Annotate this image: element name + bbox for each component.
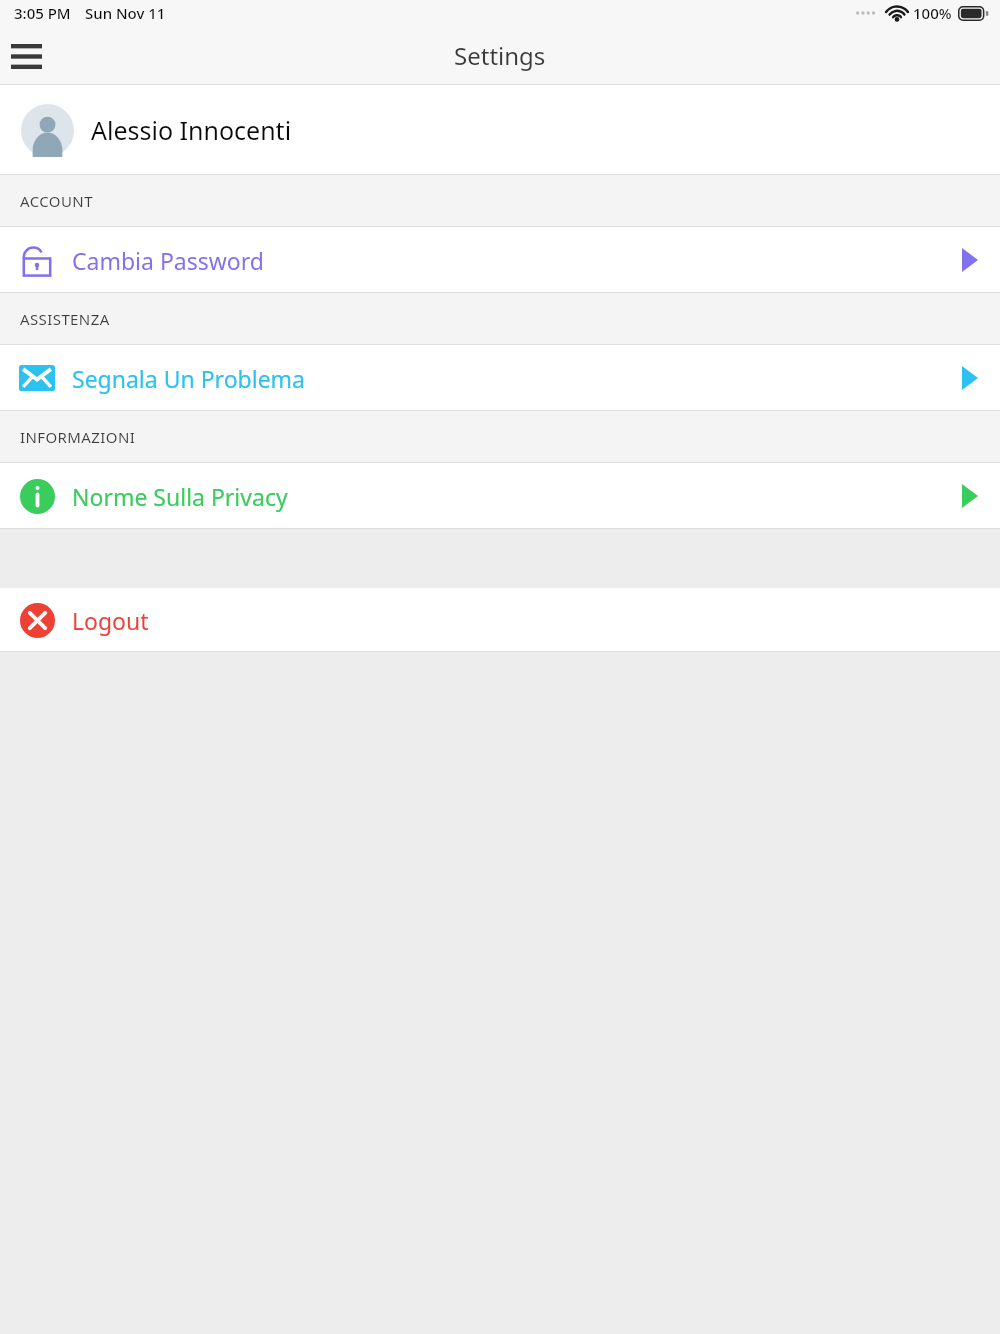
staticText: 100% xyxy=(913,3,952,23)
staticText: 3:05 PM xyxy=(14,3,71,23)
staticText: Settings xyxy=(454,39,546,72)
staticText: ACCOUNT xyxy=(20,191,93,211)
button[interactable]: Alessio Innocenti xyxy=(0,85,1000,175)
staticText: Segnala Un Problema xyxy=(72,363,306,394)
button[interactable]: Cambia Password xyxy=(0,227,1000,293)
button[interactable]: Segnala Un Problema xyxy=(0,345,1000,411)
button[interactable]: Menu xyxy=(0,30,52,82)
staticText: Alessio Innocenti xyxy=(91,113,292,147)
staticText: INFORMAZIONI xyxy=(20,427,136,447)
staticText: Cambia Password xyxy=(72,245,264,276)
button[interactable]: Logout xyxy=(0,588,1000,652)
button[interactable]: Norme Sulla Privacy xyxy=(0,463,1000,529)
staticText: Norme Sulla Privacy xyxy=(72,481,288,512)
staticText: Sun Nov 11 xyxy=(85,3,166,23)
staticText: Logout xyxy=(72,605,149,636)
staticText: ASSISTENZA xyxy=(20,309,110,329)
